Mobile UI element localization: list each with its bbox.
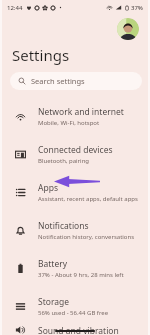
staticText: 37% - About 9 hrs, 28 mins left [38,271,124,279]
staticText: 37% [131,4,143,12]
button[interactable]: Sound and vibration [2,325,148,335]
button[interactable]: Battery [2,249,148,287]
staticText: Settings [12,45,70,65]
staticText: Mobile, Wi-Fi, hotspot [38,119,100,127]
button[interactable]: Apps [2,173,148,211]
staticText: Storage [38,296,70,308]
button[interactable]: Account [117,18,139,40]
staticText: Bluetooth, pairing [38,157,90,165]
staticText: Battery [38,258,68,270]
staticText: Connected devices [38,144,113,156]
staticText: 12:44 [7,4,23,12]
staticText: Search settings [31,76,85,86]
button[interactable]: Storage [2,287,148,325]
staticText: 56% used - 56.44 GB free [38,309,109,317]
staticText: Apps [38,182,58,194]
staticText: Notifications [38,220,89,232]
button[interactable]: Notifications [2,211,148,249]
staticText: Assistant, recent apps, default apps [38,195,138,203]
button[interactable]: Connected devices [2,135,148,173]
staticText: Sound and vibration [38,325,119,335]
staticText: Network and internet [38,106,124,118]
staticText: Notification history, conversations [38,233,135,241]
button[interactable]: Search settings [10,72,142,90]
button[interactable]: Network and internet [2,97,148,135]
